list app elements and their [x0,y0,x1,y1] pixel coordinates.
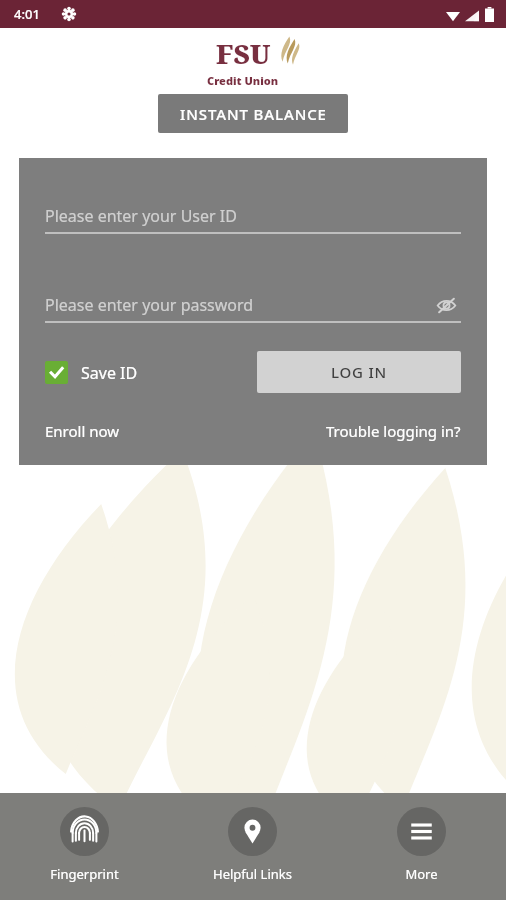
staticText: Please enter your password [45,294,254,316]
staticText: Save ID [81,362,138,384]
staticText: Trouble logging in? [326,421,461,441]
staticText: FSU [216,35,271,72]
button[interactable]: Save ID [45,361,138,384]
button[interactable]: Enroll now [45,421,120,441]
button[interactable]: Helpful Links [168,793,337,900]
staticText: INSTANT BALANCE [180,104,327,124]
button[interactable]: Fingerprint [0,793,168,900]
staticText: Credit Union [207,73,279,88]
staticText: LOG IN [331,362,388,382]
button[interactable]: Trouble logging in? [326,421,461,441]
staticText: Please enter your User ID [45,205,237,227]
button[interactable]: Please enter your User ID [45,200,461,232]
staticText: Fingerprint [50,865,119,883]
button[interactable]: More [337,793,506,900]
button[interactable]: Please enter your password [45,289,461,321]
staticText: Enroll now [45,421,120,441]
button[interactable]: LOG IN [257,351,461,393]
staticText: More [405,865,438,883]
button[interactable]: INSTANT BALANCE [158,94,348,133]
staticText: 4:01 [14,5,40,23]
button[interactable]: Show password [431,290,461,320]
staticText: Helpful Links [213,865,292,883]
